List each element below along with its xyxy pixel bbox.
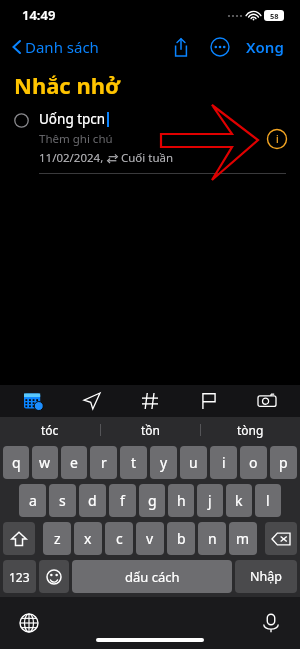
button[interactable]: Chia sẻ xyxy=(168,34,194,60)
staticText: Cuối tuần xyxy=(121,150,174,166)
button[interactable]: o xyxy=(240,446,267,479)
button[interactable]: b xyxy=(167,522,195,555)
button[interactable]: Thông tin xyxy=(266,128,288,150)
button[interactable]: z xyxy=(43,522,71,555)
button[interactable]: e xyxy=(61,446,87,479)
button[interactable]: Danh sách xyxy=(8,33,103,61)
button[interactable]: n xyxy=(198,522,226,555)
button[interactable]: h xyxy=(168,484,194,517)
button[interactable]: y xyxy=(150,446,177,479)
button[interactable]: v xyxy=(136,522,164,555)
staticText: l xyxy=(266,491,270,510)
staticText: m xyxy=(236,529,250,548)
button[interactable]: Ngày giờ xyxy=(22,390,44,412)
button[interactable]: f xyxy=(109,484,136,517)
staticText: i xyxy=(222,453,226,472)
button[interactable]: Thẻ xyxy=(139,390,161,412)
staticText: q xyxy=(12,453,21,472)
staticText: r xyxy=(101,453,107,472)
button[interactable]: Cờ xyxy=(198,390,220,412)
staticText: w xyxy=(39,453,51,472)
staticText: h xyxy=(177,491,186,510)
staticText: j xyxy=(208,491,212,510)
button[interactable]: i xyxy=(210,446,237,479)
button[interactable]: q xyxy=(3,446,29,479)
staticText: a xyxy=(29,491,37,510)
button[interactable]: Máy ảnh xyxy=(256,390,278,412)
staticText: 11/02/2024, xyxy=(39,150,107,166)
staticText: Uống tpcn xyxy=(39,110,106,128)
staticText: 58 xyxy=(270,11,279,21)
staticText: f xyxy=(120,491,125,510)
staticText: c xyxy=(116,529,123,548)
staticText: s xyxy=(59,491,66,510)
staticText: Thêm ghi chú xyxy=(39,131,113,147)
staticText: tòng xyxy=(237,422,264,438)
staticText: tồn xyxy=(141,422,161,438)
button[interactable]: x xyxy=(74,522,102,555)
staticText: Nhập xyxy=(250,568,282,585)
button[interactable]: Micrô xyxy=(260,612,282,634)
staticText: 123 xyxy=(9,569,30,585)
button[interactable]: r xyxy=(90,446,117,479)
button[interactable]: m xyxy=(229,522,257,555)
button[interactable]: p xyxy=(270,446,297,479)
button[interactable]: d xyxy=(79,484,106,517)
button[interactable]: tóc xyxy=(0,417,100,443)
staticText: y xyxy=(160,453,168,472)
button[interactable]: j xyxy=(197,484,223,517)
button[interactable]: t xyxy=(120,446,147,479)
button[interactable]: l xyxy=(255,484,281,517)
button[interactable]: s xyxy=(49,484,76,517)
button[interactable]: Vị trí xyxy=(81,390,103,412)
staticText: p xyxy=(279,453,288,472)
staticText: Danh sách xyxy=(25,37,99,57)
button[interactable]: Uống tpcn xyxy=(0,110,300,174)
button[interactable] xyxy=(3,522,35,555)
button[interactable]: a xyxy=(19,484,46,517)
staticText: 14:49 xyxy=(22,6,56,24)
staticText: z xyxy=(54,529,61,548)
staticText: n xyxy=(208,529,217,548)
staticText: d xyxy=(88,491,97,510)
staticText: b xyxy=(177,529,186,548)
button[interactable]: c xyxy=(105,522,133,555)
button[interactable]: w xyxy=(32,446,58,479)
staticText: dấu cách xyxy=(125,568,180,586)
staticText: g xyxy=(148,491,157,510)
button[interactable]: Thêm xyxy=(208,35,232,59)
staticText: Nhắc nhở xyxy=(14,70,121,100)
button[interactable] xyxy=(265,522,297,555)
button[interactable]: tòng xyxy=(201,417,300,443)
button[interactable]: tồn xyxy=(101,417,200,443)
button[interactable]: g xyxy=(139,484,165,517)
button[interactable]: Nhập xyxy=(235,560,297,593)
staticText: t xyxy=(131,453,137,472)
staticText: v xyxy=(146,529,154,548)
button[interactable] xyxy=(39,560,69,593)
staticText: i xyxy=(276,132,279,146)
staticText: tóc xyxy=(41,422,59,438)
button[interactable]: Đổi bàn phím xyxy=(18,612,40,634)
staticText: u xyxy=(189,453,198,472)
button[interactable]: dấu cách xyxy=(72,560,232,593)
staticText: k xyxy=(235,491,243,510)
staticText: o xyxy=(249,453,258,472)
staticText: Xong xyxy=(246,37,284,57)
button[interactable]: Xong xyxy=(242,33,288,61)
staticText: x xyxy=(84,529,92,548)
button[interactable]: u xyxy=(180,446,207,479)
button[interactable]: k xyxy=(226,484,252,517)
staticText: e xyxy=(70,453,78,472)
button[interactable]: 123 xyxy=(3,560,36,593)
